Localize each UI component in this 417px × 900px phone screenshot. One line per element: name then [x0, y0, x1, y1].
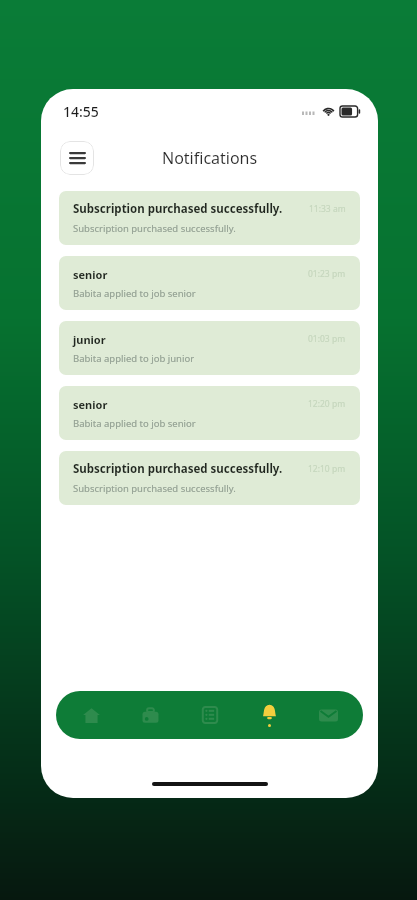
- staticText: Babita applied to job senior: [73, 417, 196, 430]
- staticText: junior: [73, 332, 106, 347]
- staticText: Subscription purchased successfully.: [73, 201, 283, 217]
- staticText: Babita applied to job junior: [73, 352, 195, 365]
- button[interactable]: Jobs: [126, 691, 174, 739]
- staticText: senior: [73, 397, 108, 412]
- staticText: Subscription purchased successfully.: [73, 482, 236, 495]
- button[interactable]: Messages: [304, 691, 352, 739]
- button[interactable]: Subscription purchased successfully.: [59, 191, 360, 245]
- button[interactable]: senior: [59, 256, 360, 310]
- staticText: Subscription purchased successfully.: [73, 461, 283, 477]
- staticText: 12:10 pm: [308, 463, 346, 475]
- button[interactable]: Subscription purchased successfully.: [59, 451, 360, 505]
- staticText: 11:33 am: [309, 203, 346, 215]
- staticText: Subscription purchased successfully.: [73, 222, 236, 235]
- button[interactable]: junior: [59, 321, 360, 375]
- button[interactable]: senior: [59, 386, 360, 440]
- staticText: 01:23 pm: [308, 268, 346, 280]
- staticText: Babita applied to job senior: [73, 287, 196, 300]
- button[interactable]: Home: [67, 691, 115, 739]
- staticText: Notifications: [162, 147, 258, 169]
- staticText: 12:20 pm: [308, 398, 346, 410]
- button[interactable]: Applications: [186, 691, 234, 739]
- staticText: 01:03 pm: [308, 333, 346, 345]
- staticText: senior: [73, 267, 108, 282]
- staticText: 14:55: [63, 102, 99, 121]
- button[interactable]: Menu: [60, 141, 94, 175]
- button[interactable]: Notifications: [245, 691, 293, 739]
